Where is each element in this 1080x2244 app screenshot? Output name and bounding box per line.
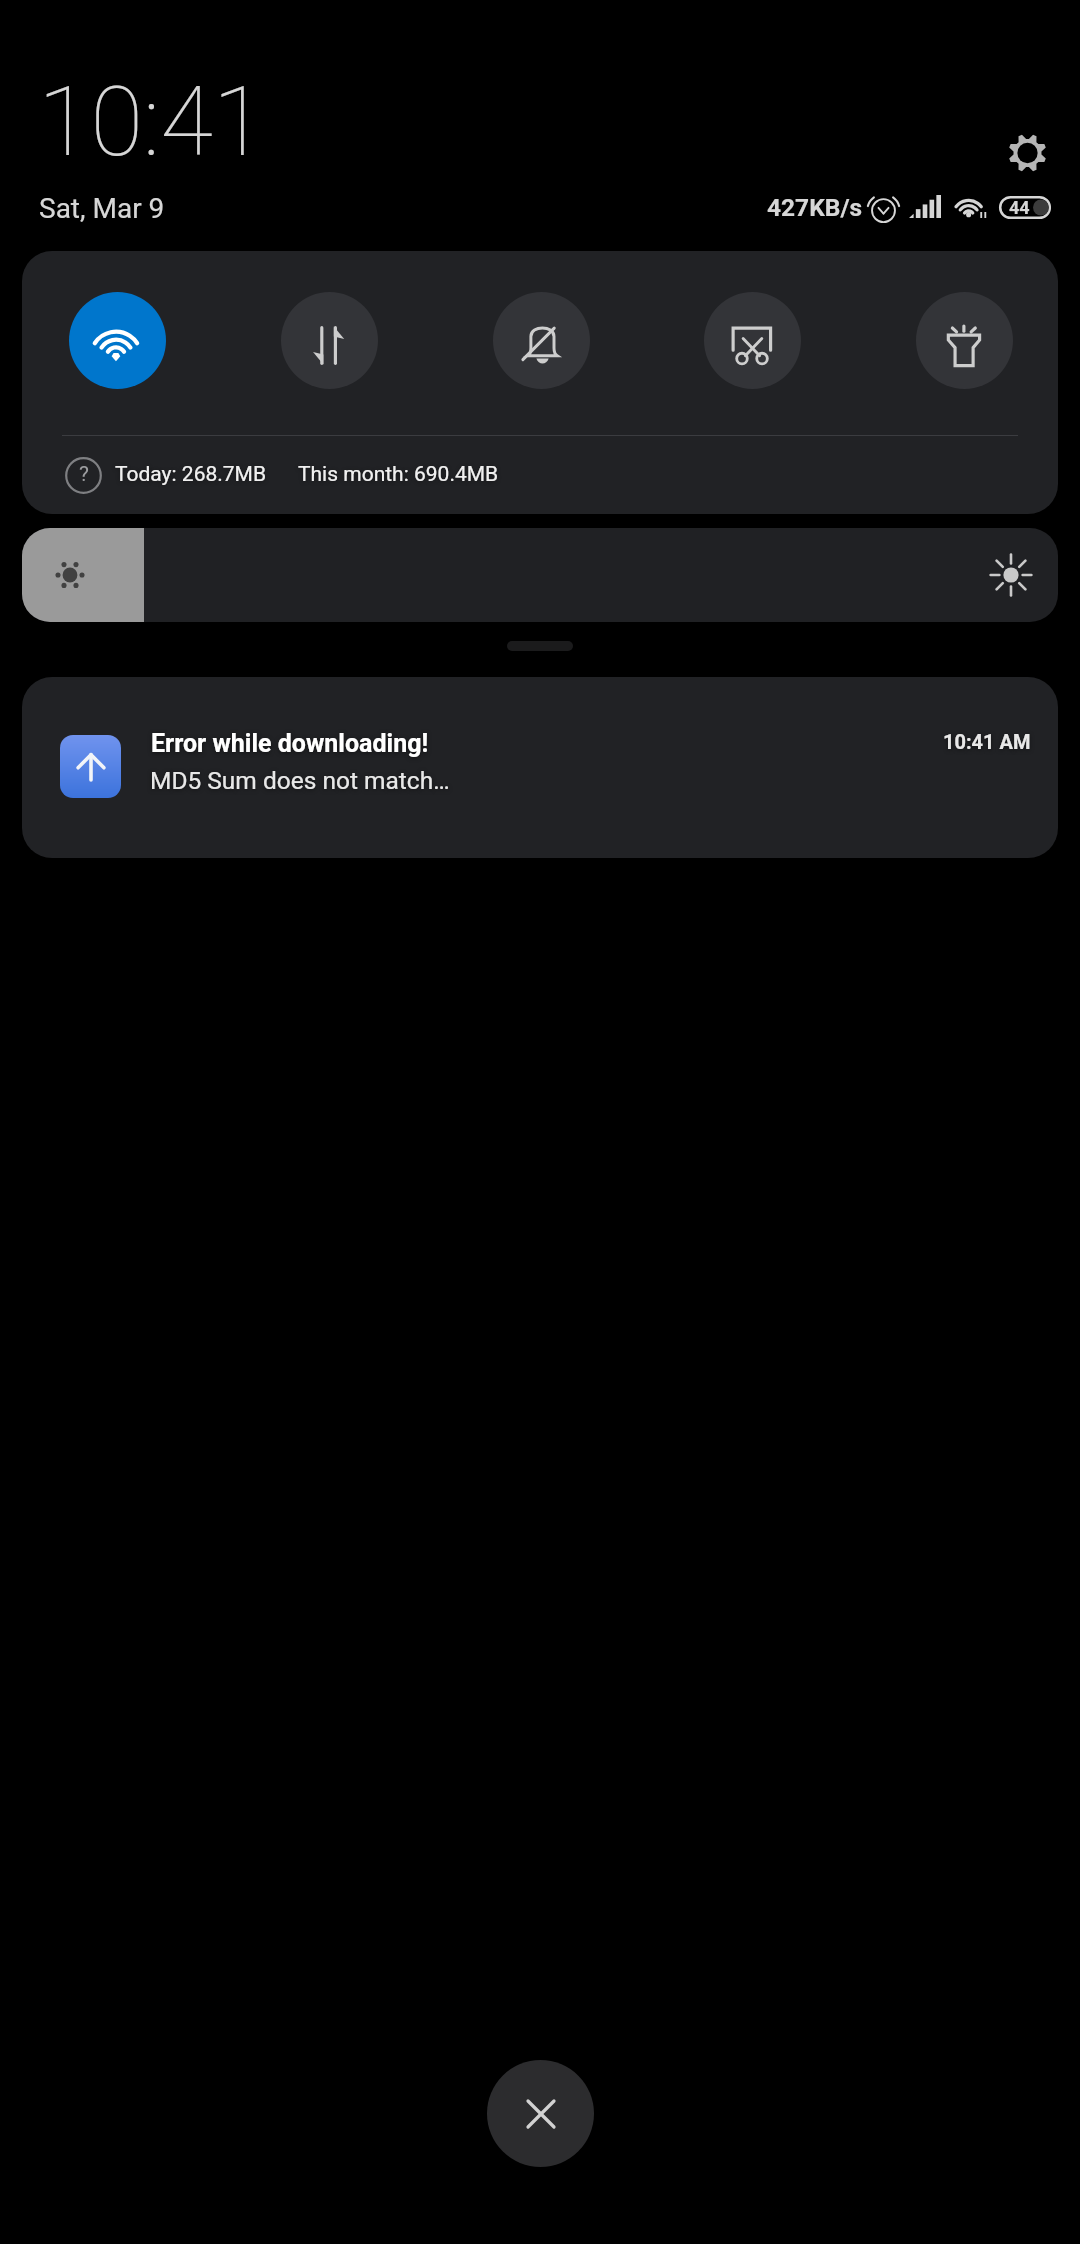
button[interactable]: Wi-Fi (69, 292, 166, 389)
staticText: Today: 268.7MB (115, 462, 266, 487)
staticText: ? (79, 462, 89, 487)
staticText: 10:41 AM (943, 730, 1031, 753)
staticText: 427KB/s (767, 193, 863, 222)
button[interactable]: Brightness (22, 528, 1058, 622)
staticText: This month: 690.4MB (298, 462, 499, 487)
staticText: 44 (1009, 197, 1030, 218)
button[interactable]: Settings (1008, 133, 1047, 173)
staticText: 10:41 (38, 66, 266, 179)
button[interactable]: Close (487, 2060, 594, 2167)
button[interactable]: Mobile data (281, 292, 378, 389)
button[interactable]: Silent mode (493, 292, 590, 389)
staticText: MD5 Sum does not match… (150, 766, 450, 795)
staticText: Sat, Mar 9 (39, 192, 165, 225)
button[interactable]: Error while downloading! (22, 677, 1058, 858)
button[interactable]: Flashlight (916, 292, 1013, 389)
button[interactable]: Screenshot (704, 292, 801, 389)
staticText: Error while downloading! (151, 729, 429, 758)
